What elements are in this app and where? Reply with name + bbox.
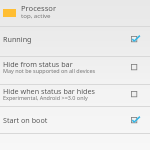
staticText: Processor <box>21 3 57 13</box>
staticText: Start on boot <box>3 115 48 125</box>
staticText: Experimental, Android >=3.0 only <box>3 94 88 101</box>
staticText: Hide when status bar hides <box>3 86 95 96</box>
staticText: Running <box>3 34 32 44</box>
staticText: May not be supported on all devices <box>3 67 96 74</box>
button[interactable]: Running <box>0 26 150 56</box>
button[interactable]: Hide from status bar <box>0 56 150 84</box>
button[interactable]: Processor <box>0 0 150 26</box>
button[interactable]: Hide when status bar hides <box>0 85 150 106</box>
staticText: top, active <box>21 11 51 19</box>
staticText: Hide from status bar <box>3 59 73 69</box>
button[interactable]: Start on boot <box>0 107 150 133</box>
